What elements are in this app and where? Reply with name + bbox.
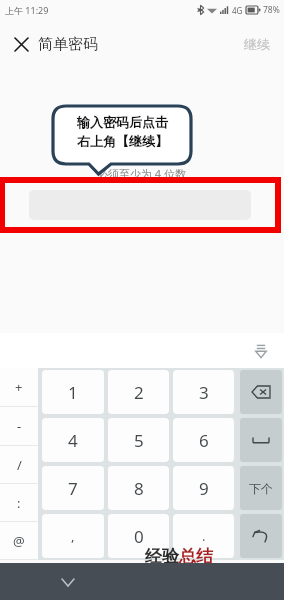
button[interactable]: 0 bbox=[108, 514, 169, 558]
button[interactable]: 7 bbox=[42, 466, 104, 510]
staticText: 下个 bbox=[249, 481, 273, 496]
staticText: 78% bbox=[263, 4, 280, 16]
button[interactable]: 3 bbox=[173, 370, 234, 414]
staticText: 总结 bbox=[179, 546, 213, 567]
staticText: - bbox=[17, 417, 22, 435]
button[interactable]: 继续 bbox=[236, 32, 278, 56]
button[interactable]: . bbox=[173, 514, 234, 558]
staticText: 4 bbox=[68, 429, 78, 452]
staticText: 9 bbox=[199, 477, 209, 500]
staticText: 输入密码后点击 bbox=[77, 114, 168, 130]
button[interactable]: 9 bbox=[173, 466, 234, 510]
button[interactable]: - bbox=[0, 407, 38, 445]
staticText: : bbox=[17, 494, 21, 512]
staticText: 3 bbox=[199, 381, 209, 404]
button[interactable]: 关闭 bbox=[8, 31, 34, 57]
staticText: 继续 bbox=[244, 36, 270, 52]
button[interactable]: 8 bbox=[108, 466, 169, 510]
staticText: @ bbox=[13, 532, 25, 550]
button[interactable]: 下个 bbox=[240, 466, 282, 510]
button[interactable]: 4 bbox=[42, 418, 104, 462]
button[interactable]: 6 bbox=[173, 418, 234, 462]
staticText: + bbox=[15, 378, 23, 396]
button[interactable]: 隐藏键盘 bbox=[248, 338, 274, 364]
staticText: 5 bbox=[134, 429, 144, 452]
staticText: 右上角【继续】 bbox=[77, 133, 168, 149]
button[interactable]: 5 bbox=[108, 418, 169, 462]
staticText: / bbox=[17, 456, 22, 474]
button[interactable]: 2 bbox=[108, 370, 169, 414]
staticText: 0 bbox=[134, 525, 144, 548]
staticText: 2 bbox=[134, 381, 144, 404]
button[interactable]: / bbox=[0, 446, 38, 483]
staticText: 简单密码 bbox=[38, 35, 98, 54]
button[interactable]: + bbox=[0, 368, 38, 406]
button[interactable]: 1 bbox=[42, 370, 104, 414]
staticText: 7 bbox=[68, 477, 78, 500]
staticText: 4G bbox=[232, 5, 243, 16]
staticText: 经验 bbox=[145, 546, 179, 567]
staticText: 8 bbox=[134, 477, 144, 500]
button[interactable]: 空格 bbox=[240, 418, 282, 462]
staticText: 1 bbox=[68, 381, 78, 404]
staticText: 6 bbox=[199, 429, 209, 452]
button[interactable]: , bbox=[42, 514, 104, 558]
staticText: 必须至少为 4 位数 bbox=[97, 166, 187, 181]
button[interactable]: @ bbox=[0, 522, 38, 559]
staticText: , bbox=[71, 527, 75, 545]
button[interactable]: 退格 bbox=[240, 370, 282, 414]
staticText: 上午 11:29 bbox=[5, 4, 49, 16]
button[interactable]: 返回 bbox=[240, 514, 282, 558]
staticText: . bbox=[202, 527, 206, 545]
button[interactable]: 收起 bbox=[53, 567, 83, 597]
button[interactable]: : bbox=[0, 484, 38, 521]
